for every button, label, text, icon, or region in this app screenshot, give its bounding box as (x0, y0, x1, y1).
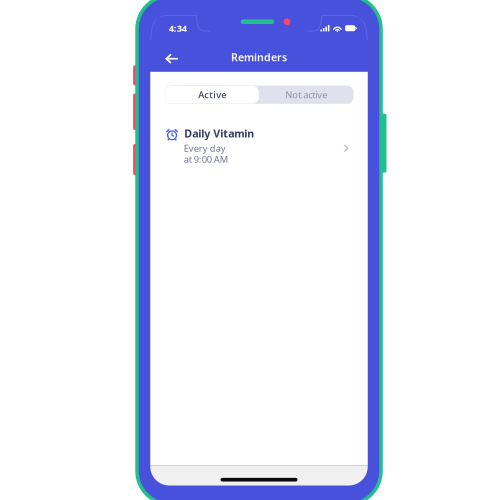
button[interactable]: Back (159, 47, 184, 67)
staticText: Every day (184, 142, 226, 154)
staticText: 4:34 (169, 22, 187, 34)
button[interactable]: Active (164, 85, 259, 104)
button[interactable]: Not active (259, 85, 353, 104)
staticText: Active (198, 88, 226, 101)
staticText: Not active (285, 88, 327, 101)
staticText: at 9:00 AM (184, 153, 228, 165)
staticText: Reminders (231, 50, 287, 64)
button[interactable]: Daily Vitamin (150, 126, 368, 165)
staticText: Daily Vitamin (184, 126, 254, 140)
